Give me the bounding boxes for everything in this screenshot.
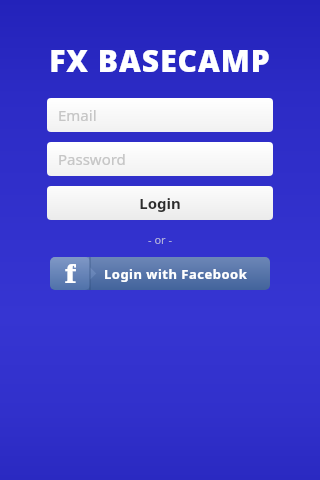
- staticText: Email: [58, 105, 97, 125]
- staticText: Login: [139, 193, 181, 213]
- button[interactable]: Login: [47, 186, 273, 220]
- button[interactable]: Login with Facebook: [50, 257, 270, 290]
- staticText: Login with Facebook: [104, 265, 248, 283]
- staticText: Password: [58, 149, 126, 169]
- staticText: FX BASECAMP: [0, 40, 320, 81]
- staticText: f: [65, 257, 76, 289]
- button[interactable]: Password: [47, 142, 273, 176]
- staticText: - or -: [0, 232, 320, 247]
- button[interactable]: Email: [47, 98, 273, 132]
